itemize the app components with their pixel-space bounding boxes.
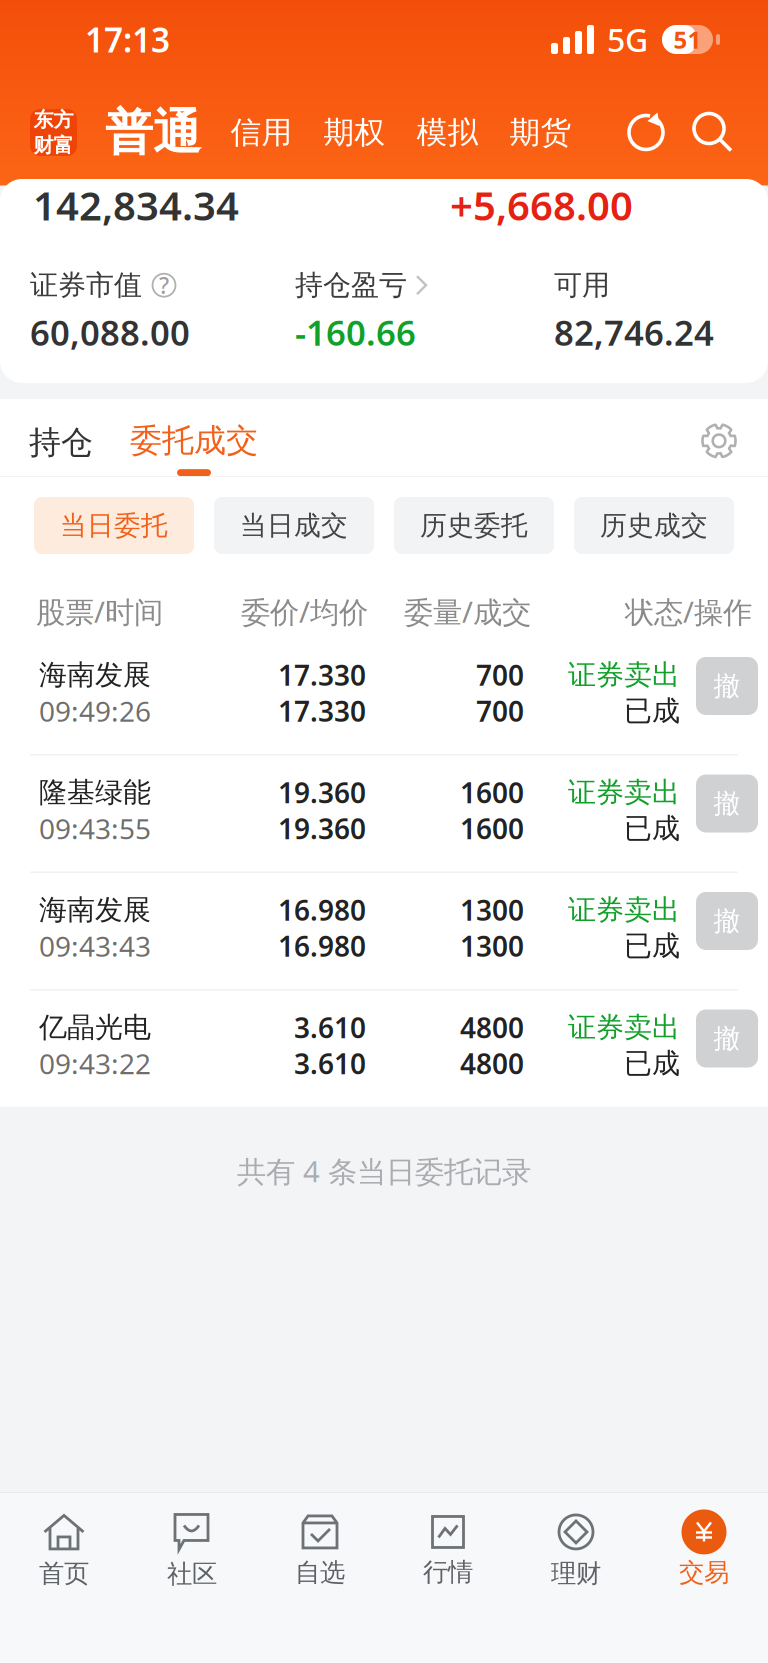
staticText: 交易 (679, 1557, 729, 1588)
staticText: 历史成交 (600, 509, 708, 542)
button[interactable]: 撤单 (696, 774, 758, 832)
staticText: 模拟 (416, 114, 478, 151)
staticText: -160.66 (295, 309, 416, 355)
staticText: 撤 (713, 787, 740, 820)
staticText: 142,834.34 (33, 178, 239, 231)
button[interactable]: 撤单 (696, 657, 758, 715)
button[interactable]: 期权 (308, 102, 401, 162)
staticText: 09:43:55 (39, 810, 151, 847)
button[interactable]: 撤单 (696, 892, 758, 950)
staticText: 82,746.24 (554, 309, 714, 355)
staticText: 委托成交 (130, 421, 258, 460)
staticText: 撤 (713, 905, 740, 937)
button[interactable]: 社区 (128, 1503, 256, 1599)
button[interactable]: 历史委托 (394, 497, 554, 554)
staticText: 证券卖出 (568, 775, 680, 810)
staticText: 51 (673, 24, 701, 55)
staticText: 已成 (624, 1046, 680, 1081)
staticText: 17.330 (278, 692, 366, 730)
button[interactable]: 撤单 (696, 1009, 758, 1067)
staticText: 已成 (624, 929, 680, 963)
staticText: 撤 (713, 670, 740, 702)
staticText: 自选 (295, 1557, 345, 1588)
staticText: 4800 (460, 1009, 524, 1046)
button[interactable]: 模拟 (401, 102, 494, 162)
staticText: 委量/成交 (404, 592, 531, 631)
staticText: 09:49:26 (39, 692, 151, 730)
button[interactable]: 首页 (0, 1503, 128, 1599)
staticText: 理财 (551, 1558, 601, 1589)
staticText: 持仓盈亏 (295, 268, 407, 302)
button[interactable]: 信用 (215, 102, 308, 162)
button[interactable]: 行情 (384, 1503, 512, 1599)
staticText: 09:43:43 (39, 927, 151, 965)
staticText: 社区 (167, 1558, 217, 1589)
staticText: 1600 (460, 774, 524, 811)
staticText: 700 (476, 656, 524, 694)
staticText: 海南发展 (39, 893, 151, 927)
staticText: 隆基绿能 (39, 775, 151, 810)
staticText: 首页 (39, 1558, 89, 1589)
staticText: 东方 (33, 107, 73, 132)
staticText: 700 (476, 692, 524, 730)
button[interactable]: 自选 (256, 1503, 384, 1599)
button[interactable]: 东方财富 (30, 109, 77, 156)
staticText: 海南发展 (39, 658, 151, 692)
staticText: 证券卖出 (568, 658, 680, 692)
button[interactable]: 历史成交 (574, 497, 734, 554)
staticText: 期权 (323, 114, 385, 151)
staticText: 撤 (713, 1022, 740, 1055)
staticText: 1300 (460, 927, 524, 965)
staticText: 17:13 (85, 17, 170, 62)
staticText: 已成 (624, 811, 680, 846)
button[interactable]: 理财 (512, 1503, 640, 1599)
staticText: 当日委托 (60, 509, 168, 542)
button[interactable]: 设置 (699, 421, 739, 461)
staticText: 证券市值 (30, 268, 142, 302)
button[interactable]: 普通 (77, 102, 215, 162)
button[interactable]: 期货 (494, 102, 587, 162)
staticText: 已成 (624, 694, 680, 728)
staticText: 行情 (423, 1556, 473, 1587)
staticText: 历史委托 (420, 509, 528, 542)
button[interactable]: 隆基绿能 (0, 755, 768, 871)
staticText: 1300 (460, 891, 524, 929)
staticText: 19.360 (278, 810, 366, 847)
staticText: ? (159, 270, 169, 300)
staticText: 普通 (105, 103, 201, 162)
button[interactable]: 持仓 (29, 421, 93, 462)
staticText: 3.610 (294, 1009, 366, 1046)
button[interactable]: 刷新 (622, 107, 672, 157)
staticText: 当日成交 (240, 509, 348, 542)
button[interactable]: 搜索 (688, 107, 738, 157)
staticText: 16.980 (278, 927, 366, 965)
button[interactable]: 海南发展 (0, 873, 768, 989)
button[interactable]: 海南发展 (0, 638, 768, 754)
staticText: 5G (607, 18, 648, 61)
staticText: 持仓 (29, 423, 93, 462)
staticText: +5,668.00 (450, 178, 633, 231)
staticText: 财富 (33, 133, 73, 158)
staticText: 委价/均价 (241, 592, 368, 631)
staticText: 共有 4 条当日委托记录 (237, 1151, 531, 1190)
button[interactable]: 当日委托 (34, 497, 194, 554)
staticText: 股票/时间 (36, 592, 163, 631)
staticText: 证券卖出 (568, 1010, 680, 1045)
staticText: 17.330 (278, 656, 366, 694)
staticText: 16.980 (278, 891, 366, 929)
staticText: 亿晶光电 (39, 1010, 151, 1045)
staticText: 60,088.00 (30, 309, 190, 355)
staticText: 证券卖出 (568, 893, 680, 927)
button[interactable]: 交易 (640, 1503, 768, 1599)
button[interactable]: 委托成交 (130, 421, 258, 476)
staticText: 可用 (554, 268, 610, 302)
staticText: 期货 (509, 114, 571, 151)
staticText: 4800 (460, 1045, 524, 1082)
button[interactable]: 当日成交 (214, 497, 374, 554)
staticText: 状态/操作 (625, 592, 752, 631)
staticText: 3.610 (294, 1045, 366, 1082)
staticText: 1600 (460, 810, 524, 847)
button[interactable]: 亿晶光电 (0, 990, 768, 1106)
staticText: 09:43:22 (39, 1045, 151, 1082)
staticText: 19.360 (278, 774, 366, 811)
